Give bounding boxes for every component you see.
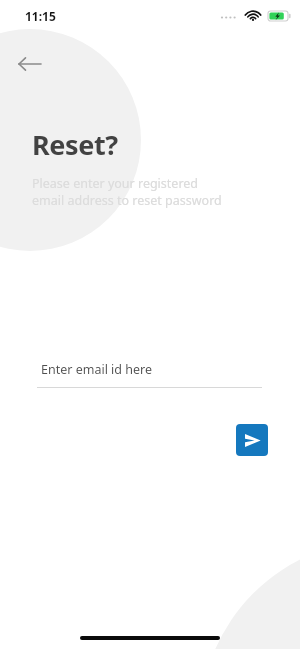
staticText: Enter email id here [41, 361, 153, 378]
staticText: Reset? [32, 126, 118, 163]
staticText: 11:15 [25, 8, 56, 24]
button[interactable]: Back [10, 44, 50, 84]
button[interactable]: Send [236, 424, 268, 456]
button[interactable]: Enter email id here [37, 361, 262, 388]
staticText: Please enter your registered email addre… [32, 175, 222, 209]
